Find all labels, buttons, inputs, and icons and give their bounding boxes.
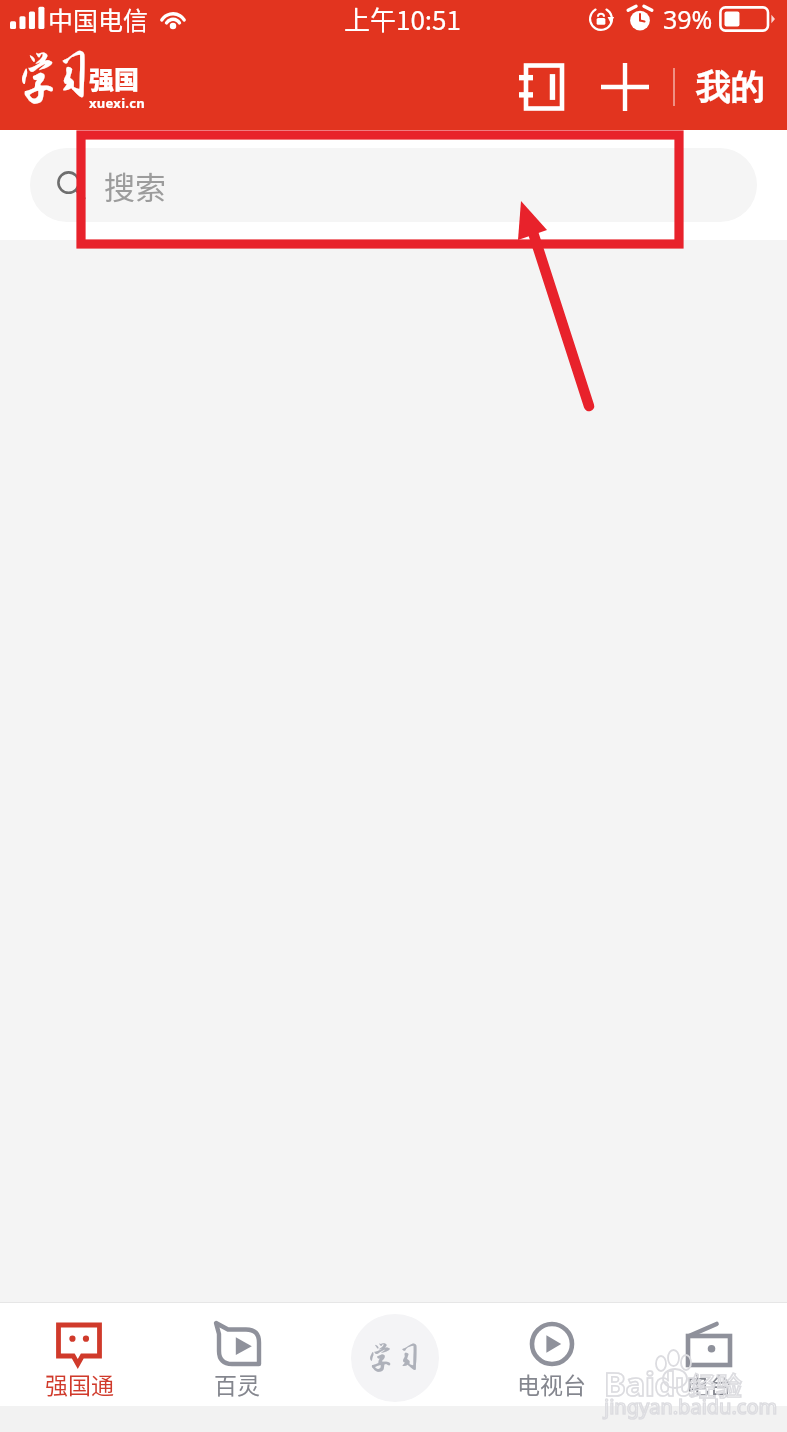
staticText: Baidu: [604, 1361, 696, 1406]
staticText: jingyan.baidu.com: [604, 1393, 778, 1420]
staticText: 学: [15, 49, 61, 109]
staticText: 经验: [690, 1366, 743, 1404]
staticText: 上午10:51: [344, 0, 461, 38]
button[interactable]: Notebook: [513, 59, 569, 115]
button[interactable]: 强国通: [0, 1303, 158, 1406]
button[interactable]: Add: [597, 59, 653, 115]
staticText: 电视台: [517, 1367, 586, 1400]
staticText: 中国电信: [48, 1, 149, 37]
staticText: 百灵: [214, 1367, 260, 1400]
staticText: 习: [51, 45, 97, 105]
staticText: 搜索: [104, 163, 166, 208]
button[interactable]: 电视台: [473, 1303, 630, 1406]
button[interactable]: 我的: [693, 56, 767, 119]
staticText: 电台: [686, 1367, 732, 1400]
button[interactable]: 搜索: [30, 148, 757, 222]
button[interactable]: 电台: [630, 1303, 787, 1406]
staticText: 39%: [663, 2, 713, 36]
button[interactable]: 学习: [316, 1303, 473, 1406]
staticText: 强国: [89, 60, 140, 96]
button[interactable]: 学习强国 xuexi.cn: [16, 56, 148, 118]
staticText: 学习: [365, 1341, 425, 1375]
button[interactable]: 百灵: [158, 1303, 316, 1406]
staticText: xuexi.cn: [89, 94, 146, 112]
staticText: 强国通: [45, 1367, 114, 1400]
staticText: 我的: [696, 66, 764, 109]
